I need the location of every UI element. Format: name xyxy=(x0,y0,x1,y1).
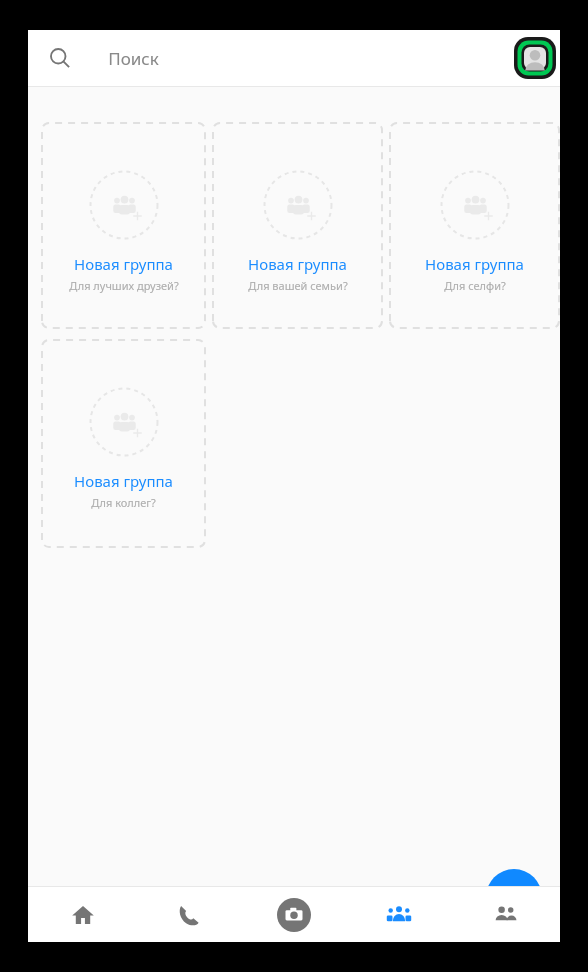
staticText: Новая группа xyxy=(74,254,173,274)
button[interactable]: Поиск xyxy=(40,38,80,78)
staticText: Для коллег? xyxy=(91,495,156,510)
staticText: Новая группа xyxy=(74,471,173,491)
staticText: Для лучших друзей? xyxy=(69,278,179,293)
button[interactable]: Группы xyxy=(349,887,449,942)
button[interactable]: Поиск xyxy=(108,30,512,86)
button[interactable]: Новая группа xyxy=(212,122,383,329)
button[interactable]: Новая группа xyxy=(41,339,206,548)
button[interactable]: Новая группа xyxy=(389,122,560,329)
button[interactable]: Камера xyxy=(244,887,344,942)
staticText: Для селфи? xyxy=(444,278,506,293)
button[interactable]: Профиль xyxy=(512,35,558,81)
button[interactable]: Контакты xyxy=(455,887,555,942)
staticText: Новая группа xyxy=(248,254,347,274)
staticText: Новая группа xyxy=(425,254,524,274)
staticText: Для вашей семьи? xyxy=(248,278,348,293)
button[interactable]: Главная xyxy=(33,887,133,942)
staticText: Поиск xyxy=(108,47,159,70)
button[interactable]: Создать группу xyxy=(486,869,542,925)
button[interactable]: Вызовы xyxy=(139,887,239,942)
button[interactable]: Новая группа xyxy=(41,122,206,329)
